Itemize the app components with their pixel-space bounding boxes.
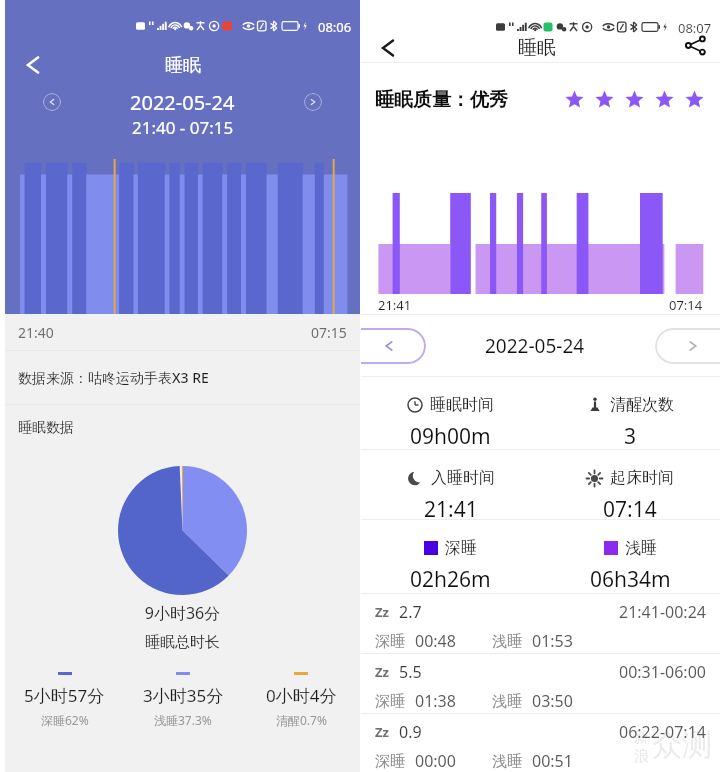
- staticText: 2022-05-24: [130, 89, 235, 116]
- staticText: 2022-05-24: [485, 333, 585, 359]
- staticText: 09h00m: [410, 422, 491, 449]
- button[interactable]: Back: [15, 47, 51, 83]
- staticText: 21:40: [18, 323, 54, 342]
- staticText: 浪: [634, 747, 649, 766]
- staticText: 入睡时间: [431, 468, 495, 488]
- staticText: 00:31-06:00: [619, 661, 706, 683]
- button[interactable]: Share: [680, 34, 710, 62]
- staticText: Zz: [375, 663, 389, 681]
- button[interactable]: 清醒次数: [540, 377, 720, 449]
- staticText: 睡眠总时长: [5, 633, 360, 652]
- staticText: 新: [634, 728, 649, 747]
- staticText: 睡眠时间: [430, 395, 494, 415]
- staticText: 数据来源：咕咚运动手表X3 RE: [18, 368, 209, 387]
- staticText: 众测: [652, 726, 712, 764]
- staticText: 浅睡: [492, 752, 522, 771]
- button[interactable]: Previous day: [361, 328, 426, 364]
- button[interactable]: 深睡: [361, 520, 540, 593]
- staticText: 睡眠质量：优秀: [375, 88, 508, 112]
- button[interactable]: Next day: [655, 328, 720, 364]
- staticText: 睡眠数据: [18, 419, 74, 437]
- staticText: 06:22-07:14: [619, 721, 706, 743]
- staticText: 3小时35分: [143, 684, 224, 707]
- staticText: 08:07: [678, 19, 712, 34]
- staticText: 5.5: [399, 661, 422, 683]
- staticText: 深睡: [375, 752, 405, 771]
- button[interactable]: 睡眠时间: [361, 377, 540, 449]
- staticText: 00:51: [532, 750, 573, 772]
- staticText: 清醒次数: [610, 395, 674, 415]
- staticText: 0小时4分: [266, 684, 337, 707]
- button[interactable]: 入睡时间: [361, 450, 540, 519]
- staticText: 07:15: [311, 323, 347, 342]
- button[interactable]: Zz: [361, 714, 720, 772]
- staticText: 睡眠: [518, 36, 556, 60]
- button[interactable]: 浅睡: [540, 520, 720, 593]
- button[interactable]: 起床时间: [540, 450, 720, 519]
- staticText: 起床时间: [610, 468, 674, 488]
- staticText: 21:41: [424, 495, 478, 519]
- staticText: 2.7: [399, 601, 422, 623]
- button[interactable]: Back: [373, 34, 403, 62]
- staticText: 07:14: [669, 296, 703, 314]
- staticText: 浅睡: [625, 538, 657, 558]
- staticText: 0.9: [399, 721, 422, 743]
- staticText: 21:40 - 07:15: [132, 116, 234, 139]
- staticText: 睡眠: [165, 54, 201, 77]
- staticText: 深睡: [375, 632, 405, 651]
- staticText: Zz: [375, 723, 389, 741]
- button[interactable]: 5小时57分: [5, 672, 124, 728]
- button[interactable]: Zz: [361, 594, 720, 653]
- button[interactable]: 睡眠质量：优秀: [361, 63, 720, 127]
- staticText: 01:53: [532, 630, 573, 652]
- staticText: 08:06: [318, 18, 352, 33]
- staticText: 深睡: [445, 538, 477, 558]
- button[interactable]: Previous day: [43, 93, 61, 111]
- staticText: 03:50: [532, 690, 573, 712]
- staticText: Zz: [375, 603, 389, 621]
- staticText: 21:41: [378, 296, 412, 314]
- staticText: 浅睡37.3%: [154, 712, 212, 728]
- staticText: 9小时36分: [5, 602, 360, 624]
- staticText: 深睡: [375, 692, 405, 711]
- staticText: 3: [624, 422, 637, 449]
- staticText: 02h26m: [410, 565, 491, 593]
- staticText: 07:14: [603, 495, 657, 519]
- button[interactable]: Next day: [304, 93, 322, 111]
- staticText: 浅睡: [492, 632, 522, 651]
- staticText: 清醒0.7%: [276, 712, 327, 728]
- staticText: 深睡62%: [41, 712, 89, 728]
- staticText: 06h34m: [590, 565, 671, 593]
- staticText: 5小时57分: [24, 684, 105, 707]
- button[interactable]: 0小时4分: [242, 672, 360, 728]
- staticText: 00:00: [415, 750, 456, 772]
- staticText: 浅睡: [492, 692, 522, 711]
- button[interactable]: Zz: [361, 654, 720, 713]
- button[interactable]: 3小时35分: [124, 672, 242, 728]
- staticText: 01:38: [415, 690, 456, 712]
- staticText: 00:48: [415, 630, 456, 652]
- staticText: 21:41-00:24: [619, 601, 706, 623]
